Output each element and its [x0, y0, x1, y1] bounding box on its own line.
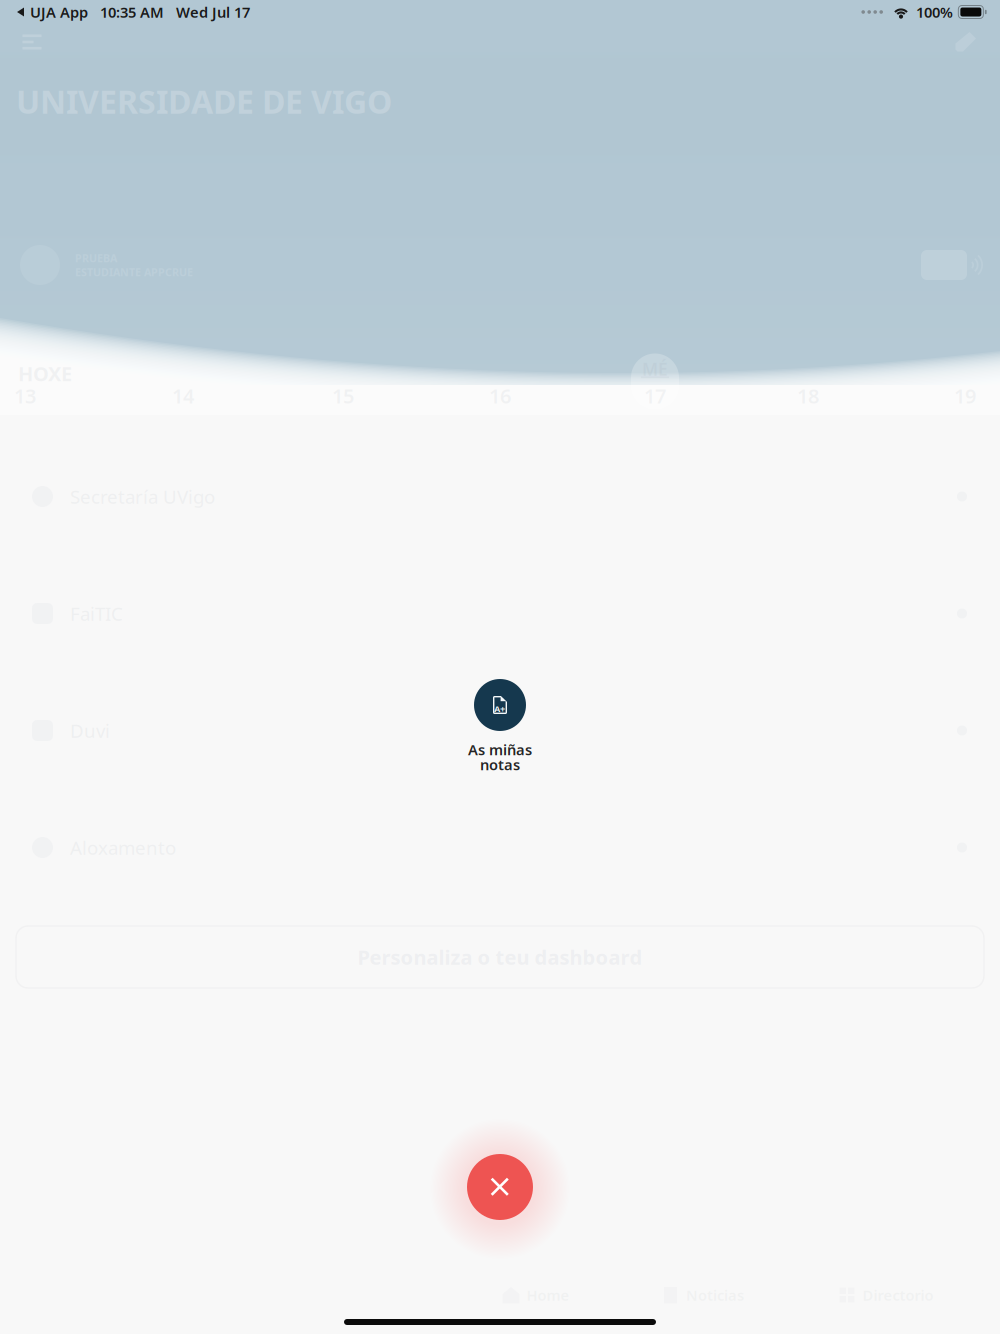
- staticText: UNIVERSIDADE DE VIGO: [16, 80, 392, 122]
- button[interactable]: Duvi: [0, 672, 1000, 789]
- staticText: 17: [644, 382, 666, 409]
- staticText: PRUEBA: [75, 251, 117, 265]
- staticText: 15: [332, 382, 354, 409]
- staticText: HOXE: [18, 360, 72, 387]
- staticText: 100%: [916, 2, 953, 22]
- staticText: As miñas: [468, 740, 532, 759]
- staticText: ESTUDIANTE APPCRUE: [75, 265, 193, 279]
- staticText: 13: [14, 382, 36, 409]
- staticText: 10:35 AM: [100, 2, 164, 22]
- staticText: 14: [172, 382, 194, 409]
- staticText: 16: [489, 382, 511, 409]
- staticText: 18: [797, 382, 819, 409]
- staticText: UJA App: [30, 2, 88, 22]
- staticText: notas: [480, 755, 520, 774]
- staticText: FaiTIC: [70, 601, 123, 626]
- staticText: Personaliza o teu dashboard: [357, 944, 642, 970]
- staticText: Duvi: [70, 718, 110, 743]
- staticText: 19: [954, 382, 976, 409]
- button[interactable]: Close: [425, 1112, 575, 1262]
- staticText: Aloxamento: [70, 835, 176, 860]
- button[interactable]: A+: [468, 679, 532, 772]
- staticText: Secretaría UVigo: [70, 484, 215, 509]
- button[interactable]: Menu: [12, 25, 52, 59]
- staticText: MÉ: [642, 357, 668, 380]
- staticText: A+: [494, 703, 505, 715]
- button[interactable]: Tags: [946, 25, 986, 59]
- staticText: Wed Jul 17: [176, 2, 250, 22]
